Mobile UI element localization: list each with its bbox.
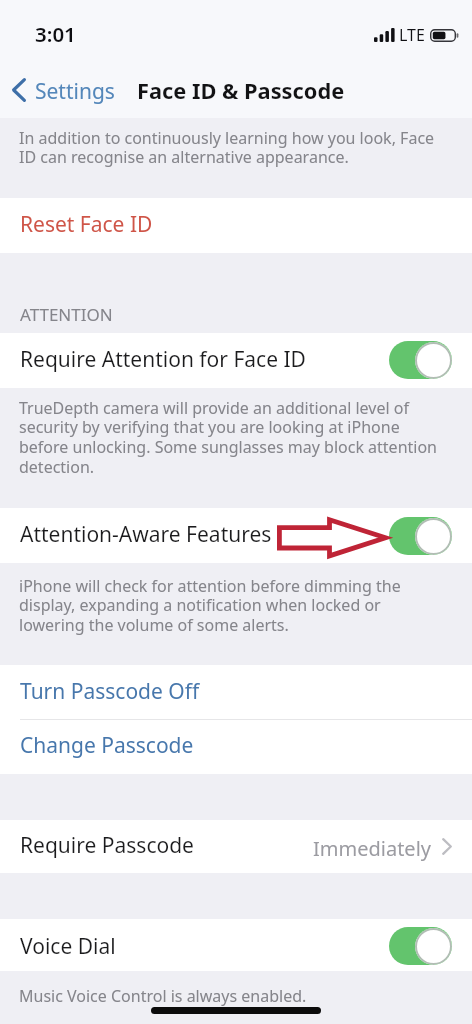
staticText: Reset Face ID: [20, 210, 153, 239]
button[interactable]: Toggle, on: [389, 927, 452, 965]
staticText: Settings: [35, 77, 115, 106]
button[interactable]: Reset Face ID: [0, 198, 472, 253]
staticText: Music Voice Control is always enabled.: [19, 985, 307, 1007]
staticText: Require Attention for Face ID: [20, 345, 306, 374]
staticText: In addition to continuously learning how…: [19, 127, 435, 168]
button[interactable]: Turn Passcode Off: [0, 665, 472, 719]
button[interactable]: Toggle, on: [389, 517, 452, 555]
staticText: Change Passcode: [20, 731, 194, 760]
staticText: TrueDepth camera will provide an additio…: [19, 397, 438, 478]
staticText: Immediately: [313, 835, 431, 862]
button[interactable]: Attention-Aware Features: [0, 508, 472, 563]
staticText: iPhone will check for attention before d…: [19, 575, 401, 636]
staticText: ATTENTION: [20, 303, 113, 326]
button[interactable]: Require Passcode: [0, 820, 472, 873]
button[interactable]: Require Attention for Face ID: [0, 333, 472, 388]
staticText: LTE: [399, 24, 425, 46]
staticText: Voice Dial: [20, 932, 116, 961]
staticText: Turn Passcode Off: [20, 677, 200, 706]
staticText: 3:01: [35, 20, 76, 48]
staticText: Attention-Aware Features: [20, 520, 272, 549]
staticText: Face ID & Passcode: [137, 76, 345, 106]
button[interactable]: Change Passcode: [0, 719, 472, 774]
button[interactable]: Toggle, on: [389, 341, 452, 379]
other: Back to Settings: [12, 78, 26, 102]
button[interactable]: Voice Dial: [0, 919, 472, 971]
staticText: Require Passcode: [20, 831, 194, 860]
button[interactable]: Back to Settings: [9, 73, 118, 107]
